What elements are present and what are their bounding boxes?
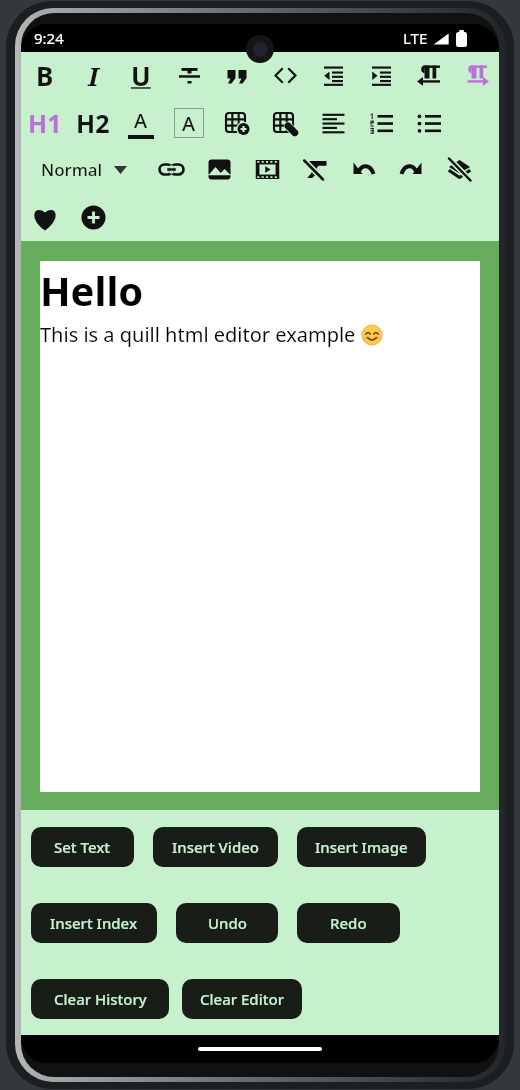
button[interactable]: Insert Image [297, 827, 426, 867]
button[interactable]: Favourite [21, 194, 69, 241]
staticText: 9:24 [34, 28, 64, 48]
button[interactable]: Edit table [261, 99, 309, 146]
button[interactable]: Undo [339, 146, 387, 193]
staticText: Normal [41, 158, 103, 181]
button[interactable]: Decrease indent [309, 52, 357, 99]
button[interactable]: Align [309, 99, 357, 146]
button[interactable]: B [21, 52, 69, 99]
staticText: B [36, 58, 54, 93]
button[interactable]: Background colour [165, 99, 213, 146]
staticText: Clear Editor [200, 989, 284, 1009]
button[interactable]: Clear formatting [291, 146, 339, 193]
staticText: Undo [208, 913, 247, 933]
button[interactable]: Bullet list [405, 99, 453, 146]
button[interactable]: Redo [297, 903, 400, 943]
button[interactable]: Normal [21, 146, 147, 193]
staticText: Insert Image [315, 837, 408, 857]
button[interactable]: Undo [176, 903, 278, 943]
button[interactable]: I [69, 52, 117, 99]
button[interactable]: Left to right [453, 52, 499, 99]
button[interactable]: Redo [387, 146, 435, 193]
staticText: Redo [330, 913, 367, 933]
button[interactable]: Link [147, 146, 195, 193]
button[interactable]: H2 [69, 99, 117, 146]
staticText: A [182, 110, 196, 137]
staticText: U [131, 58, 151, 93]
button[interactable]: Numbered list [357, 99, 405, 146]
button[interactable]: Set Text [31, 827, 134, 867]
button[interactable]: Insert video [243, 146, 291, 193]
button[interactable]: Add [69, 194, 117, 241]
staticText: Insert Video [172, 837, 259, 857]
button[interactable]: U [117, 52, 165, 99]
button[interactable]: Insert table [213, 99, 261, 146]
button[interactable]: Layers [435, 146, 483, 193]
button[interactable]: Clear Editor [182, 979, 302, 1019]
button[interactable]: Insert Index [31, 903, 157, 943]
staticText: I [88, 58, 99, 93]
staticText: Hello [40, 263, 144, 317]
staticText: Clear History [54, 989, 147, 1009]
button[interactable]: Quote [213, 52, 261, 99]
button[interactable]: Strikethrough [165, 52, 213, 99]
button[interactable]: Insert image [195, 146, 243, 193]
button[interactable]: Insert Video [153, 827, 278, 867]
button[interactable]: Right to left [405, 52, 453, 99]
button[interactable]: Increase indent [357, 52, 405, 99]
button[interactable]: Code [261, 52, 309, 99]
staticText: This is a quill html editor example [40, 321, 361, 348]
staticText: Set Text [54, 837, 111, 857]
staticText: LTE [403, 28, 428, 48]
staticText: H1 [28, 106, 62, 140]
button[interactable]: H1 [21, 99, 69, 146]
staticText: A [134, 107, 148, 134]
staticText: H2 [76, 106, 110, 140]
staticText: Insert Index [50, 913, 138, 933]
button[interactable]: Clear History [31, 979, 169, 1019]
button[interactable]: Text colour [117, 99, 165, 146]
